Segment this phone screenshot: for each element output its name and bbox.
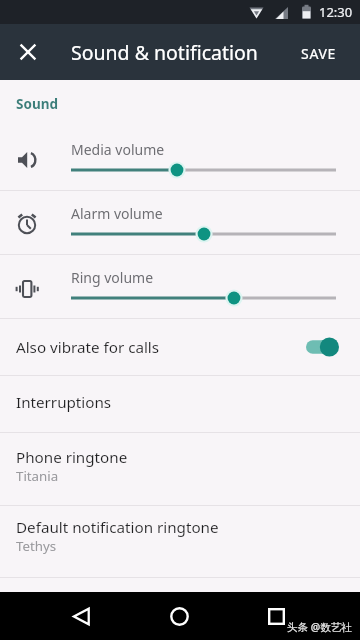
staticText: Phone ringtone: [16, 447, 128, 468]
staticText: Also vibrate for calls: [16, 337, 160, 358]
staticText: Titania: [16, 467, 59, 485]
staticText: SAVE: [301, 44, 337, 63]
button[interactable]: Media volume: [0, 127, 360, 190]
button[interactable]: Ring volume: [0, 255, 360, 318]
button[interactable]: Interruptions: [0, 376, 360, 432]
staticText: Sound & notification: [71, 39, 258, 66]
staticText: 12:30: [319, 3, 353, 21]
button[interactable]: Home: [149, 592, 209, 640]
staticText: Default notification ringtone: [16, 517, 219, 538]
button[interactable]: Phone ringtone: [0, 433, 360, 505]
staticText: Interruptions: [16, 392, 112, 413]
staticText: Ring volume: [71, 268, 154, 287]
staticText: Tethys: [16, 537, 57, 555]
button[interactable]: Also vibrate for calls: [0, 319, 360, 375]
button[interactable]: Close: [0, 24, 56, 80]
button[interactable]: Recents: [246, 592, 306, 640]
button[interactable]: Default notification ringtone: [0, 506, 360, 577]
button[interactable]: SAVE: [299, 24, 360, 80]
staticText: Media volume: [71, 140, 165, 159]
staticText: Alarm volume: [71, 204, 163, 223]
button[interactable]: Alarm volume: [0, 191, 360, 254]
button[interactable]: Back: [51, 592, 111, 640]
staticText: 头条 @数艺社: [287, 620, 352, 634]
staticText: Sound: [16, 95, 58, 113]
